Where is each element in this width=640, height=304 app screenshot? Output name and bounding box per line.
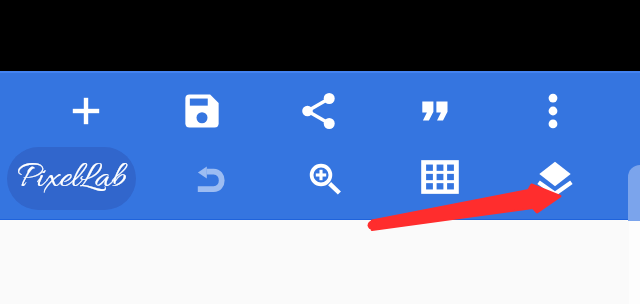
button[interactable]: Text [411,87,459,135]
button[interactable]: Zoom in [297,151,345,199]
button[interactable]: Share [295,87,343,135]
button[interactable]: PixelLab [7,147,136,210]
staticText: PixelLab [17,156,126,202]
button[interactable]: Add [62,87,110,135]
button[interactable]: Undo [187,155,235,203]
button[interactable]: Layers [531,150,579,198]
button[interactable]: Side panel [628,165,640,221]
button[interactable]: Grid [416,153,464,201]
button[interactable]: More options [529,87,577,135]
button[interactable]: Save [178,87,226,135]
